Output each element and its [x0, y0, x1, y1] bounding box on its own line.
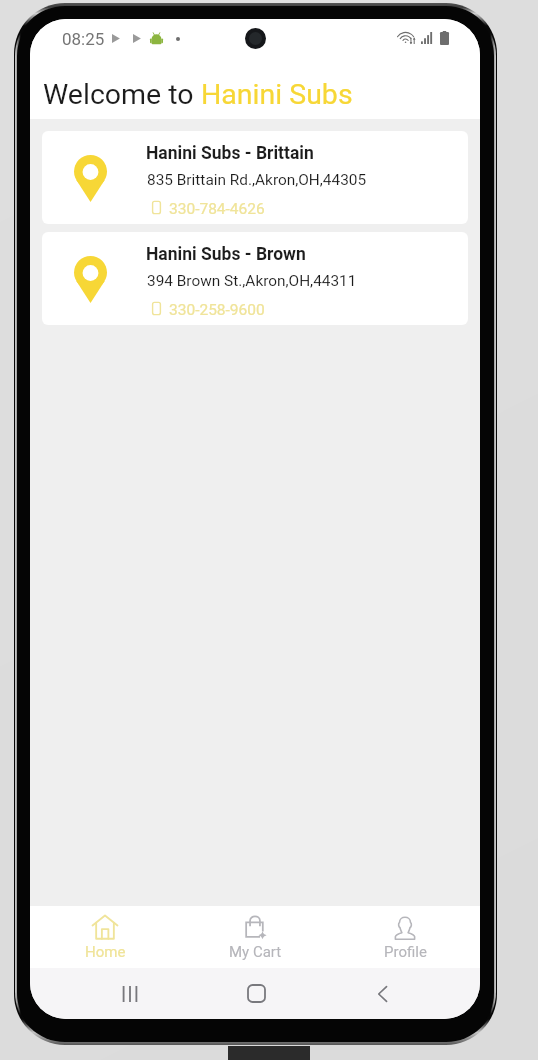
staticText: Hanini Subs - Brown	[146, 244, 306, 265]
button[interactable]: Back	[319, 968, 445, 1019]
staticText: Home	[85, 943, 126, 961]
staticText: 08:25	[62, 29, 105, 49]
staticText: Profile	[384, 943, 427, 961]
staticText: Hanini Subs	[201, 78, 353, 111]
staticText: 330-784-4626	[169, 200, 265, 218]
button[interactable]: Home	[30, 906, 180, 968]
staticText: Hanini Subs - Brittain	[146, 143, 314, 164]
staticText: My Cart	[229, 943, 282, 961]
button[interactable]: Recent apps	[67, 968, 193, 1019]
staticText: 330-258-9600	[169, 301, 265, 319]
button[interactable]: Home	[193, 968, 319, 1019]
button[interactable]: Profile	[330, 906, 480, 968]
staticText: 394 Brown St.,Akron,OH,44311	[147, 272, 357, 290]
button[interactable]: Hanini Subs - Brown	[42, 232, 468, 325]
button[interactable]: My Cart	[180, 906, 330, 968]
staticText: 835 Brittain Rd.,Akron,OH,44305	[147, 171, 367, 189]
button[interactable]: Hanini Subs - Brittain	[42, 131, 468, 224]
staticText: Welcome to	[43, 78, 201, 111]
